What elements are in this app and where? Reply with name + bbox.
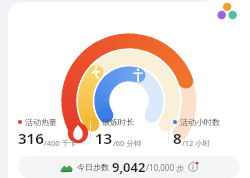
button[interactable] xyxy=(8,2,250,114)
staticText: 今日步数 xyxy=(77,162,109,172)
button[interactable]: 活动小时数 xyxy=(169,114,246,150)
staticText: 8 xyxy=(173,128,182,148)
staticText: 锻炼时长 xyxy=(102,117,134,127)
button[interactable]: 活动热量 xyxy=(14,114,90,150)
button[interactable]: Info xyxy=(188,162,198,172)
staticText: 9,042 xyxy=(112,158,146,176)
staticText: 活动小时数 xyxy=(180,117,220,127)
staticText: /10,000 步 xyxy=(146,162,185,173)
staticText: 13 xyxy=(95,128,113,148)
staticText: 活动热量 xyxy=(25,117,57,127)
button[interactable]: 今日步数 xyxy=(18,156,240,178)
staticText: /12 小时 xyxy=(182,138,211,148)
staticText: 316 xyxy=(18,128,44,148)
button[interactable]: Sharing xyxy=(206,0,250,22)
button[interactable]: 锻炼时长 xyxy=(91,114,168,150)
staticText: /400 千卡 xyxy=(44,138,77,148)
staticText: /60 分钟 xyxy=(113,138,142,148)
